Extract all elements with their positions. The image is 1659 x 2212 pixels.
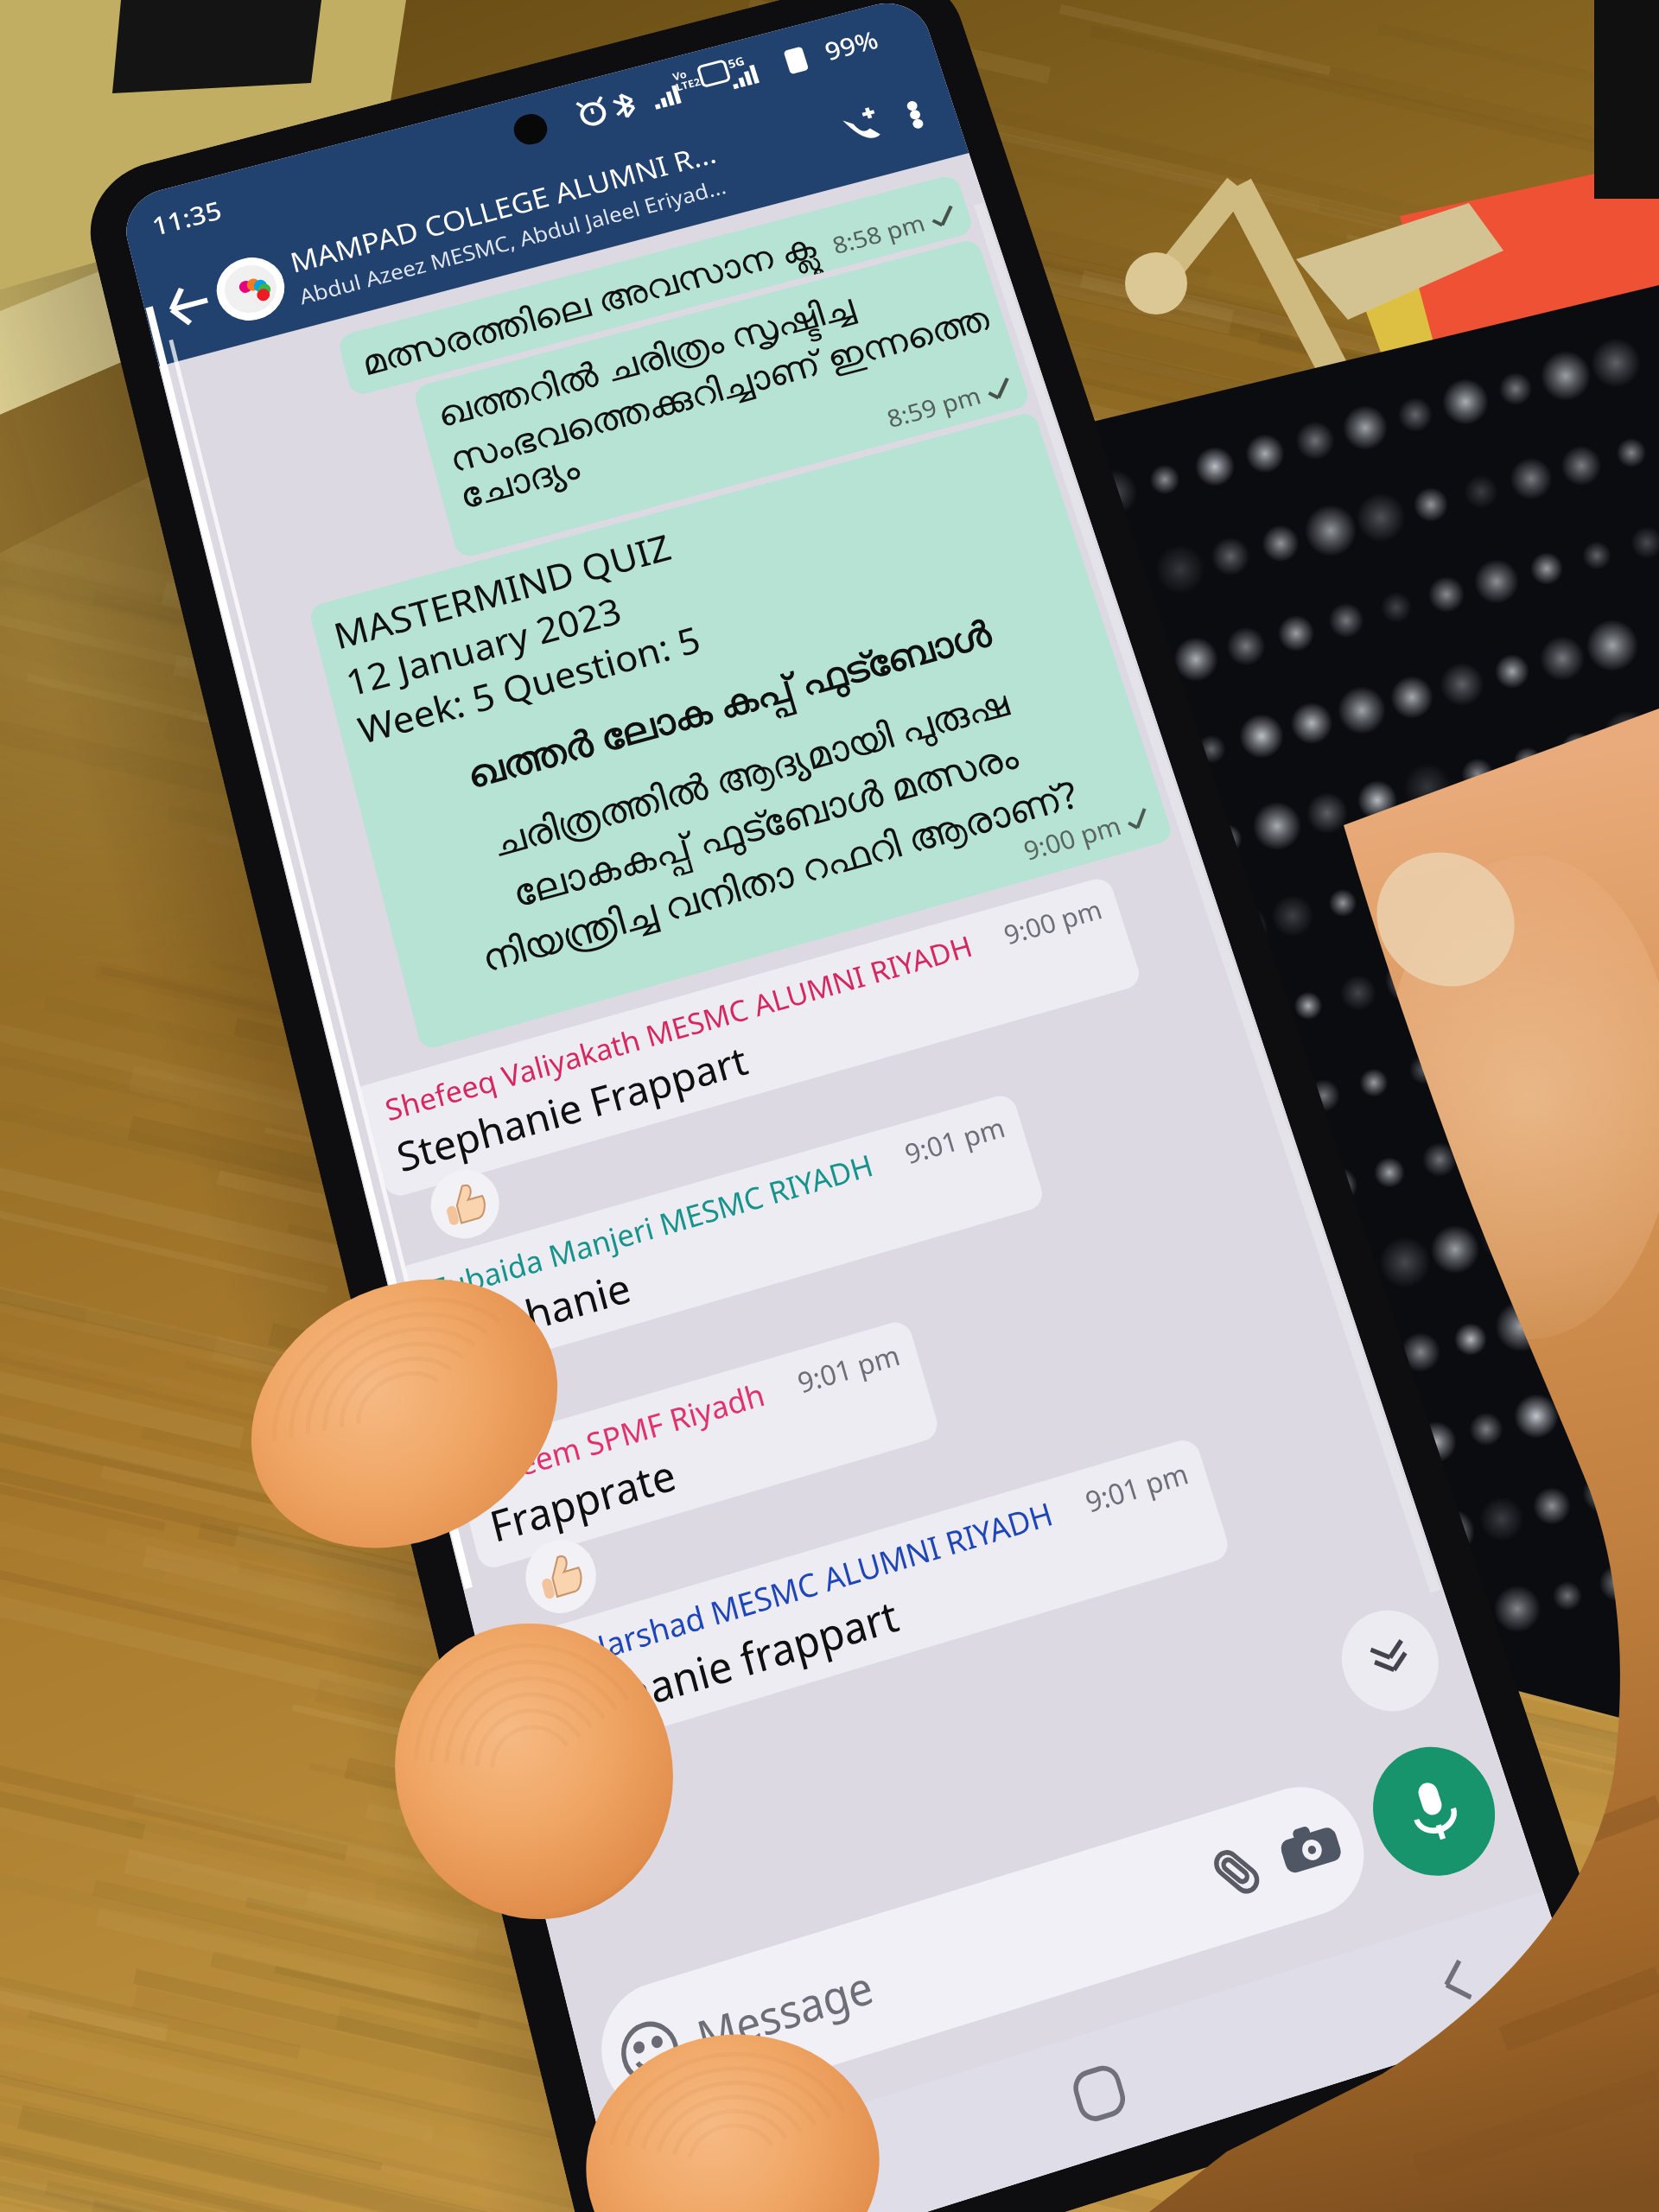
staticText: 9:00 pm: [1019, 807, 1126, 868]
button[interactable]: ഖത്തറിൽ ചരിത്രം സൃഷ്ടിച്ച: [412, 238, 1032, 560]
button[interactable]: Recents: [677, 2143, 795, 2212]
staticText: സംഭവത്തെക്കുറിച്ചാണ് ഇന്നത്തെ: [444, 294, 995, 482]
button[interactable]: Thumbs up reaction: [423, 1162, 507, 1247]
staticText: Saleem SPMF Riyadh: [473, 1373, 770, 1497]
staticText: മത്സരത്തിലെ അവസാന ക്ലൂ: [356, 222, 821, 385]
staticText: MT. Harshad MESMC ALUMNI RIYADH: [521, 1492, 1058, 1690]
button[interactable]: Back: [1397, 1920, 1516, 2044]
staticText: Shefeeq Valiyakath MESMC ALUMNI RIYADH: [381, 926, 978, 1130]
staticText: 9:00 pm: [999, 891, 1106, 952]
staticText: Stephanie: [437, 1259, 637, 1367]
staticText: ഖത്തർ ലോക കപ്പ് ഫുട്ബോൾ: [462, 607, 998, 800]
staticText: ഖത്തറിൽ ചരിത്രം സൃഷ്ടിച്ച: [432, 282, 860, 437]
staticText: MASTERMIND QUIZ: [329, 522, 677, 660]
button[interactable]: Thumbs up reaction: [470, 1344, 555, 1431]
staticText: 9:01 pm: [793, 1335, 904, 1401]
staticText: Zubaida Manjeri MESMC RIYADH: [426, 1145, 878, 1310]
button[interactable]: Home: [1040, 2031, 1159, 2157]
button[interactable]: Voice message: [1357, 1732, 1512, 1891]
staticText: Message: [690, 1955, 880, 2069]
staticText: Frapprate: [484, 1445, 682, 1555]
staticText: Stephanie Frappart: [391, 1033, 754, 1184]
button[interactable]: Thumbs up reaction: [567, 1725, 655, 1819]
staticText: 8:58 pm: [828, 207, 929, 261]
button[interactable]: MASTERMIND QUIZ: [308, 411, 1174, 1051]
button[interactable]: MT. Harshad MESMC ALUMNI RIYADH: [499, 1436, 1232, 1767]
staticText: Week: 5 Question: 5: [353, 614, 706, 754]
button[interactable]: Video call: [824, 94, 901, 164]
staticText: 99%: [820, 23, 882, 68]
button[interactable]: Zubaida Manjeri MESMC RIYADH: [405, 1092, 1046, 1383]
staticText: Abdul Azeez MESMC, Abdul Jaleel Eriyad..…: [296, 172, 730, 311]
staticText: 12 January 2023: [341, 585, 627, 707]
staticText: 11:35: [148, 193, 226, 243]
button[interactable]: Thumbs up reaction: [518, 1531, 604, 1622]
button[interactable]: മത്സരത്തിലെ അവസാന ക്ലൂ: [336, 173, 975, 397]
button[interactable]: Saleem SPMF Riyadh: [451, 1318, 941, 1572]
button[interactable]: Back: [154, 272, 224, 339]
staticText: 9:01 pm: [900, 1108, 1009, 1172]
button[interactable]: More options: [885, 88, 945, 142]
staticText: ചോദ്യം: [456, 451, 584, 516]
staticText: 5G: [726, 53, 747, 72]
staticText: MAMPAD COLLEGE ALUMNI R...: [286, 134, 720, 280]
staticText: 8:59 pm: [883, 379, 985, 435]
button[interactable]: Scroll to bottom: [1329, 1599, 1452, 1723]
button[interactable]: Shefeeq Valiyakath MESMC ALUMNI RIYADH: [360, 875, 1143, 1200]
staticText: 9:01 pm: [1081, 1453, 1193, 1521]
staticText: Vo LTE2: [671, 64, 702, 94]
button[interactable]: Message: [588, 1772, 1380, 2132]
staticText: Stephanie frappart: [533, 1585, 905, 1750]
staticText: ചരിത്രത്തിൽ ആദ്യമായി പുരുഷ ലോകകപ്പ് ഫുട്…: [389, 651, 1142, 1000]
